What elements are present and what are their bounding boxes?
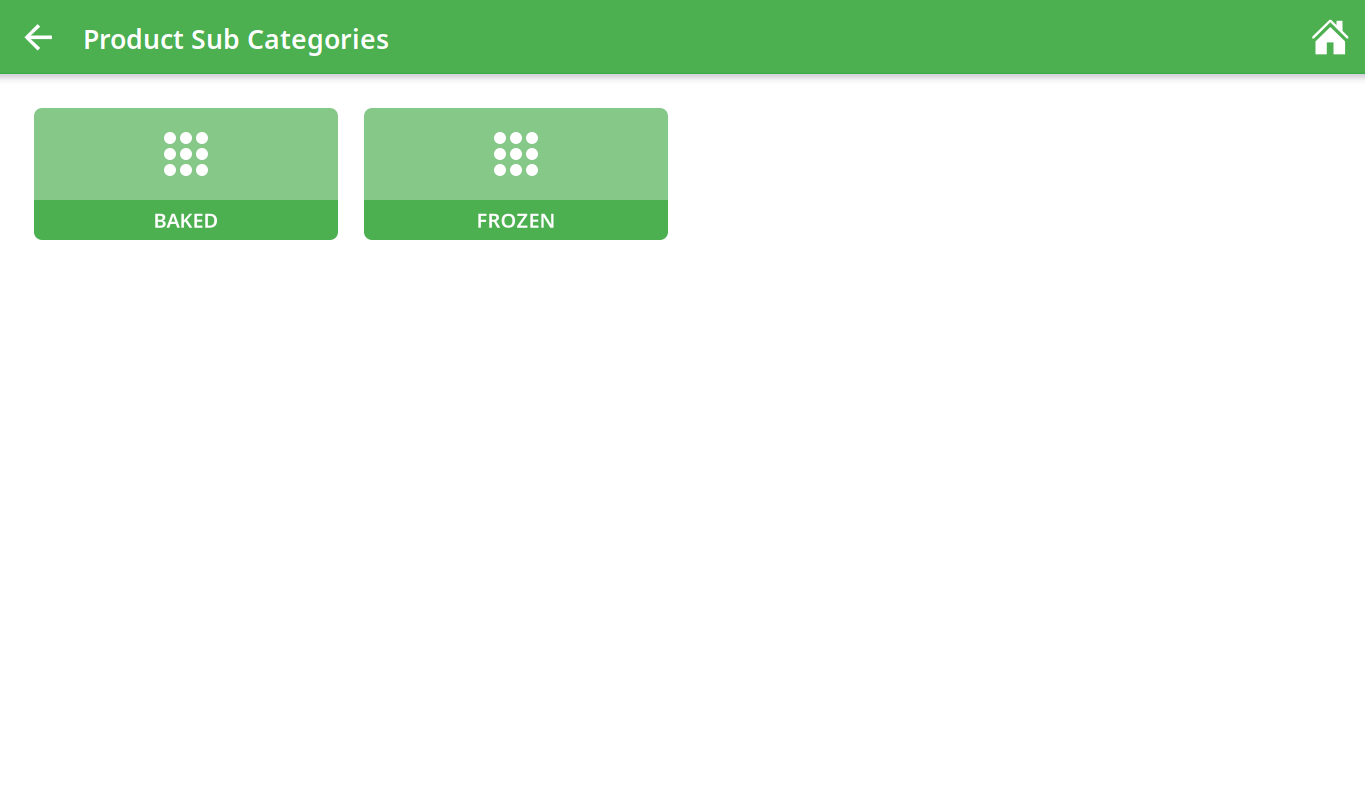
staticText: BAKED <box>153 207 218 233</box>
button[interactable]: Home <box>1302 9 1358 65</box>
button[interactable]: Back <box>14 9 70 65</box>
staticText: Product Sub Categories <box>83 21 389 56</box>
staticText: FROZEN <box>476 207 555 233</box>
button[interactable]: FROZEN <box>364 108 668 240</box>
button[interactable]: BAKED <box>34 108 338 240</box>
